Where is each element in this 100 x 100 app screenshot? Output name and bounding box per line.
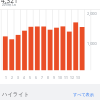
staticText: 10: [58, 75, 62, 80]
staticText: 9: [53, 75, 55, 80]
staticText: 2019年1月: [2, 3, 17, 7]
staticText: 1: [5, 75, 7, 80]
staticText: 6: [35, 75, 37, 80]
staticText: すべて表示: [73, 92, 94, 97]
staticText: 2: [11, 75, 13, 80]
staticText: 12: [70, 75, 74, 80]
staticText: 8: [47, 75, 49, 80]
staticText: ハイライト: [2, 91, 30, 98]
button[interactable]: すべて表示: [73, 92, 94, 97]
staticText: 5: [29, 75, 31, 80]
staticText: 1,000: [87, 41, 97, 46]
staticText: 3: [17, 75, 19, 80]
staticText: 2,000: [87, 11, 97, 16]
staticText: 13: [76, 75, 80, 80]
staticText: 4,321: [1, 0, 18, 5]
staticText: 11: [64, 75, 68, 80]
staticText: 4: [23, 75, 25, 80]
staticText: 7: [41, 75, 43, 80]
